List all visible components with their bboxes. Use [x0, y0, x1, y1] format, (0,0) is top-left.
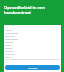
- button[interactable]: Akkoord: [5, 52, 60, 55]
- button[interactable]: Functie: [5, 40, 60, 43]
- button[interactable]: Aantal: [5, 46, 60, 49]
- button[interactable]: Datum: [5, 49, 60, 52]
- button[interactable]: Extra: [5, 55, 60, 58]
- staticText: Functie: [5, 40, 14, 43]
- staticText: Opvoedbeleid in een: [4, 5, 45, 10]
- staticText: Plaats: [5, 43, 12, 46]
- staticText: Akkoord: [5, 52, 15, 55]
- button[interactable]: E-mailadres: [5, 31, 60, 34]
- staticText: Telefoon: [5, 34, 15, 37]
- button[interactable]: Telefoon: [5, 34, 60, 37]
- button[interactable]: Plaats: [5, 43, 60, 46]
- staticText: Datum: [5, 49, 13, 52]
- staticText: handomdraai: [4, 10, 31, 15]
- button[interactable]: Naam: [5, 28, 60, 31]
- staticText: Verstuur: [28, 66, 38, 69]
- staticText: Naam: [5, 28, 12, 31]
- button[interactable]: Verstuur: [5, 65, 60, 70]
- staticText: Organisatie: [5, 37, 19, 40]
- staticText: Extra: [5, 55, 11, 58]
- button[interactable]: Organisatie: [5, 37, 60, 40]
- staticText: Aantal: [5, 46, 13, 49]
- staticText: E-mailadres: [5, 31, 19, 34]
